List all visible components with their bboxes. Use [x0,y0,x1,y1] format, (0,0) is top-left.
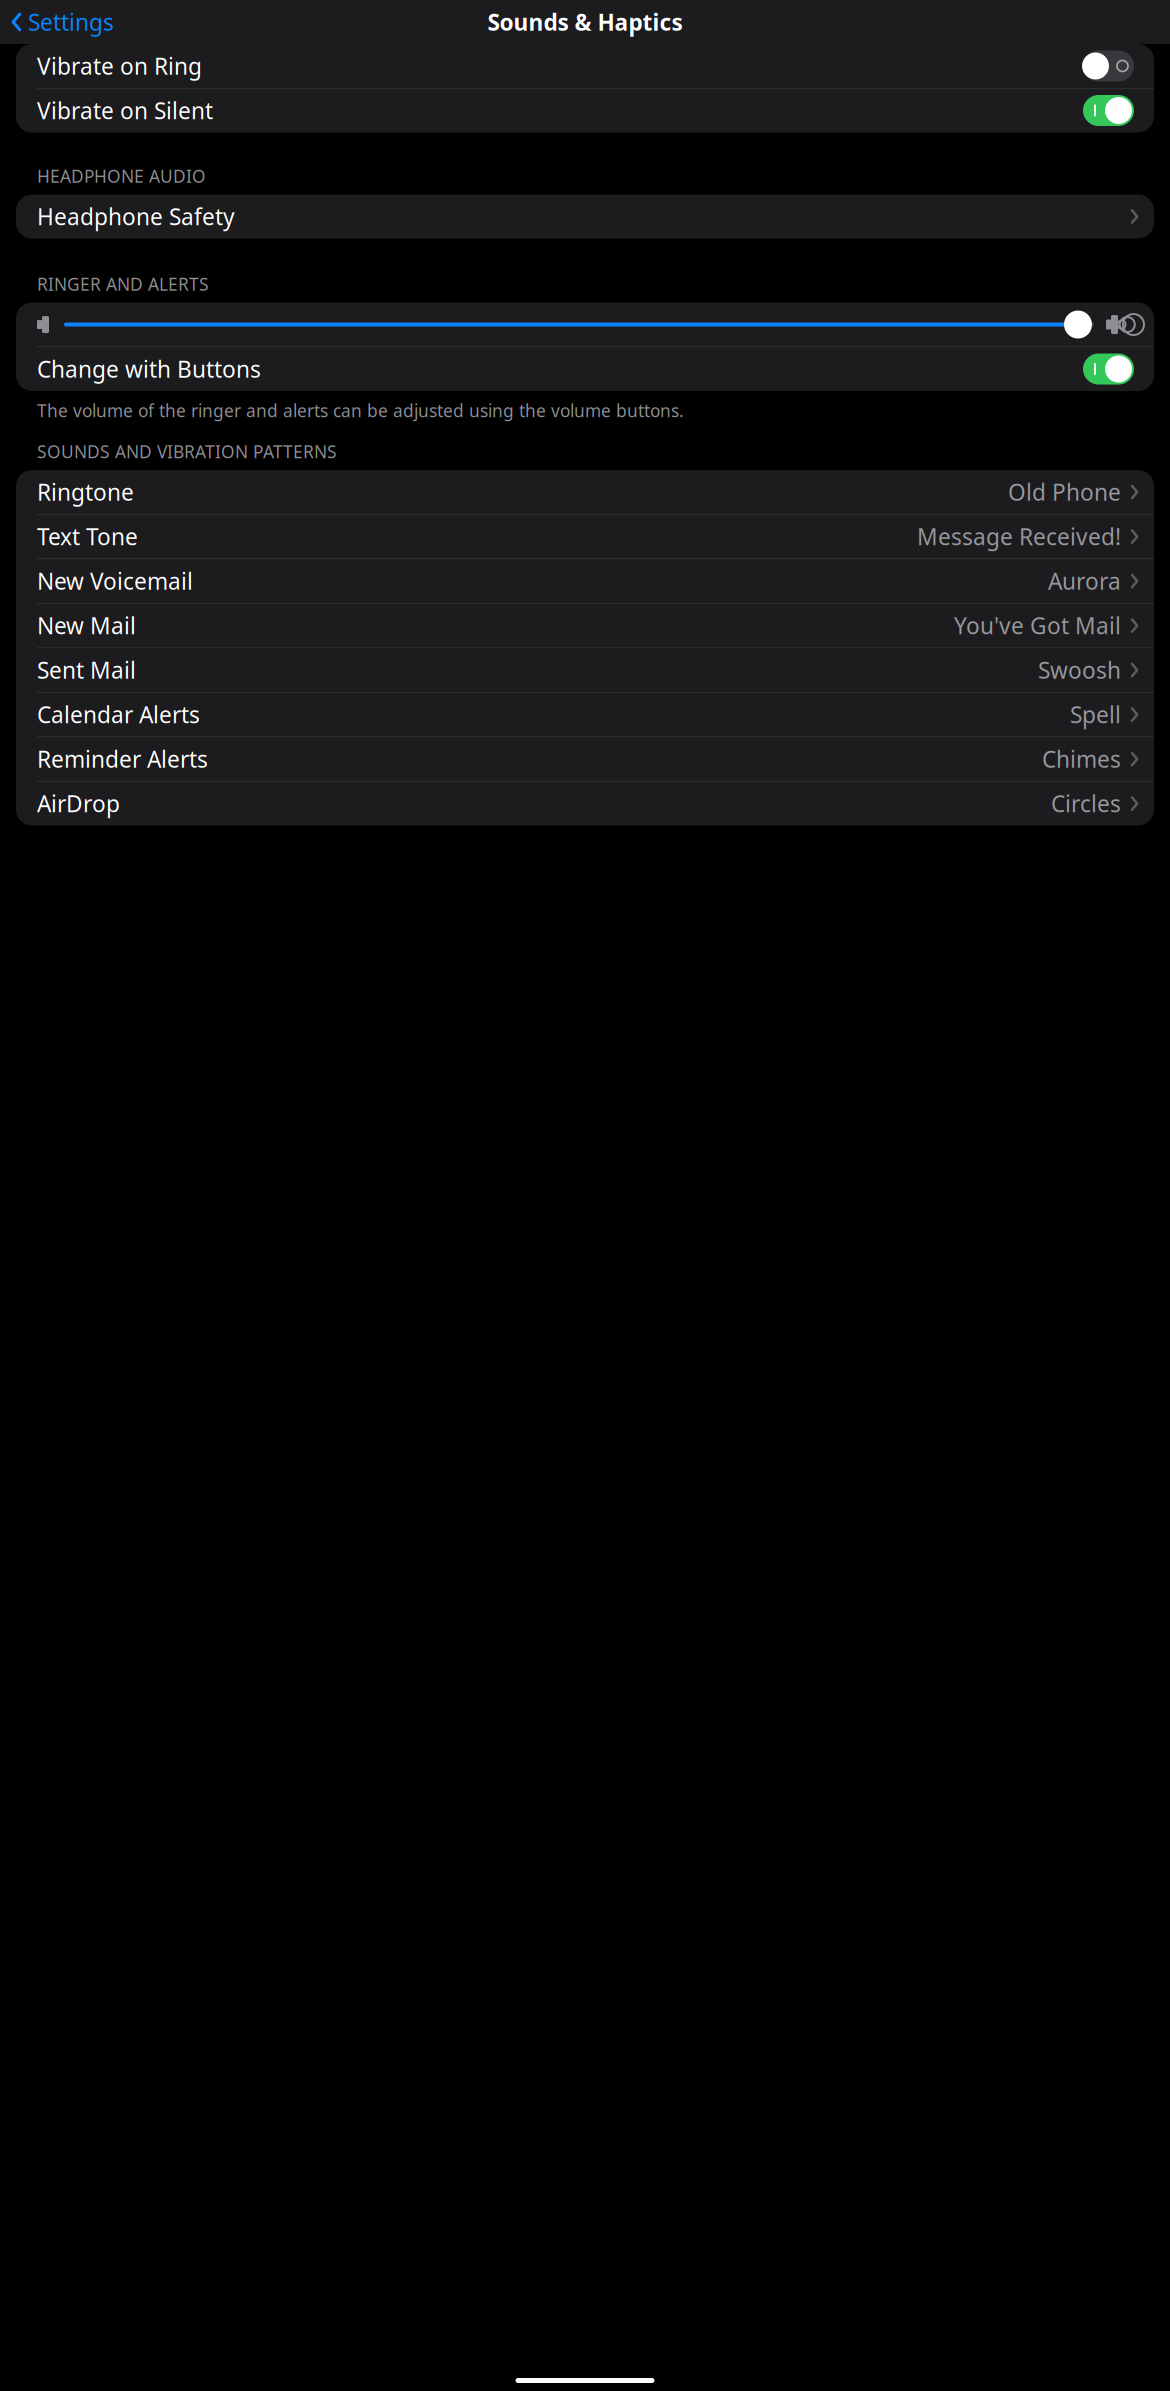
staticText: New Mail [37,610,136,641]
button[interactable]: Vibrate on Ring [16,44,1154,88]
staticText: Reminder Alerts [37,744,208,774]
staticText: Change with Buttons [37,354,261,384]
staticText: Settings [28,7,114,37]
button[interactable]: Calendar Alerts [16,693,1154,737]
staticText: Chimes [1042,744,1121,774]
staticText: Aurora [1048,566,1121,596]
staticText: New Voicemail [37,566,193,596]
staticText: AirDrop [37,788,120,819]
button[interactable]: Change with Buttons [16,347,1154,391]
button[interactable]: AirDrop [16,782,1154,826]
staticText: SOUNDS AND VIBRATION PATTERNS [37,440,337,463]
staticText: Headphone Safety [37,201,235,232]
button[interactable]: Vibrate on Silent [16,88,1154,132]
staticText: Circles [1051,788,1121,819]
button[interactable]: Headphone Safety [16,194,1154,238]
staticText: Vibrate on Ring [37,51,202,81]
staticText: HEADPHONE AUDIO [37,164,206,187]
button[interactable]: Ringtone [16,470,1154,514]
staticText: You've Got Mail [954,610,1121,641]
staticText: Ringtone [37,477,134,507]
button[interactable]: New Voicemail [16,559,1154,603]
staticText: Calendar Alerts [37,699,200,730]
staticText: RINGER AND ALERTS [37,272,209,295]
staticText: Spell [1070,699,1121,730]
button[interactable]: Text Tone [16,515,1154,559]
staticText: Message Received! [917,521,1121,552]
staticText: Text Tone [37,521,138,552]
staticText: Vibrate on Silent [37,95,213,125]
staticText: Sounds & Haptics [487,7,682,37]
staticText: Old Phone [1008,477,1121,507]
button[interactable]: Settings [0,1,122,43]
staticText: The volume of the ringer and alerts can … [37,399,684,422]
staticText: Sent Mail [37,655,136,685]
staticText: Swoosh [1038,655,1121,685]
button[interactable]: Reminder Alerts [16,737,1154,781]
button[interactable]: Sent Mail [16,648,1154,692]
button[interactable]: New Mail [16,604,1154,648]
